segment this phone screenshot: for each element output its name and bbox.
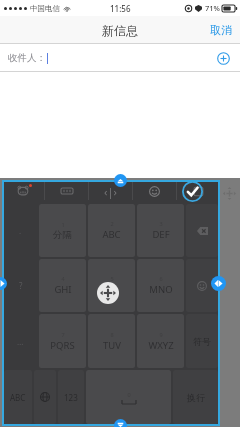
staticText: 换行 bbox=[187, 392, 205, 403]
staticText: … bbox=[17, 336, 24, 347]
staticText: ? bbox=[19, 280, 23, 291]
staticText: 新信息 bbox=[102, 23, 138, 38]
button[interactable]: Move down bbox=[114, 419, 127, 427]
button[interactable]: del bbox=[186, 204, 218, 257]
button[interactable]: Confirm bbox=[182, 181, 203, 202]
button[interactable]: space bbox=[86, 370, 171, 424]
button[interactable]: Resize right bbox=[211, 276, 226, 291]
button[interactable]: emoji bbox=[186, 259, 218, 312]
staticText: 中国电信 bbox=[30, 4, 60, 13]
staticText: PQRS bbox=[50, 339, 75, 352]
button[interactable]: Move up bbox=[114, 174, 127, 187]
staticText: ABC bbox=[102, 228, 121, 241]
button[interactable]: Move bbox=[223, 187, 236, 200]
button[interactable]: Settings bbox=[177, 180, 220, 202]
button[interactable]: Cursor bbox=[89, 180, 132, 202]
button[interactable]: ? bbox=[4, 259, 37, 312]
button[interactable]: 取消 bbox=[202, 16, 240, 44]
staticText: MNO bbox=[149, 283, 173, 296]
button[interactable]: 7 bbox=[39, 314, 86, 368]
staticText: TUV bbox=[103, 339, 121, 352]
button[interactable]: Resize left bbox=[0, 277, 7, 290]
staticText: ‹|› bbox=[104, 184, 117, 199]
staticText: DEF bbox=[152, 228, 170, 241]
staticText: ABC bbox=[10, 392, 26, 403]
button[interactable]: 5 bbox=[88, 259, 135, 312]
staticText: 11:56 bbox=[110, 3, 131, 14]
staticText: WXYZ bbox=[148, 339, 174, 352]
button[interactable]: Move keyboard bbox=[97, 282, 119, 304]
staticText: 符号 bbox=[193, 336, 211, 347]
staticText: GHI bbox=[54, 283, 72, 296]
button[interactable] bbox=[30, 402, 210, 419]
button[interactable]: Keyboard layout bbox=[45, 180, 88, 202]
button[interactable]: Microphone bbox=[214, 401, 234, 421]
staticText: 123 bbox=[64, 392, 78, 403]
staticText: 收件人： bbox=[8, 52, 46, 64]
staticText: 分隔 bbox=[53, 229, 72, 241]
button[interactable]: Emoji bbox=[133, 180, 176, 202]
staticText: JKL bbox=[105, 283, 119, 296]
staticText: 取消 bbox=[210, 23, 232, 37]
staticText: 71% bbox=[205, 3, 220, 13]
button[interactable]: 9 bbox=[137, 314, 184, 368]
button[interactable]: Add contact bbox=[212, 47, 234, 69]
button[interactable]: globe bbox=[34, 370, 56, 424]
button[interactable]: 6 bbox=[137, 259, 184, 312]
button[interactable]: Stickers bbox=[2, 180, 44, 202]
